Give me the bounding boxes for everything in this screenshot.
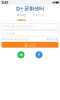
staticText: D+	[16, 5, 23, 12]
button[interactable]: 회원가입	[30, 12, 47, 21]
staticText: /비밀번호 찾기	[10, 37, 30, 41]
button[interactable]: Facebook login	[35, 51, 42, 58]
staticText: 아이디를 입력해주세요	[3, 25, 34, 28]
staticText: N	[19, 52, 22, 57]
staticText: 회원가입	[46, 38, 58, 41]
staticText: 로그인	[17, 13, 26, 17]
staticText: 로그인	[24, 42, 36, 47]
staticText: 아이디	[1, 38, 10, 41]
button[interactable]: 로그인	[1, 42, 58, 48]
staticText: 문화센터	[24, 5, 44, 12]
staticText: 회원가입	[32, 13, 44, 17]
staticText: f	[38, 52, 40, 57]
staticText: 9:41	[1, 0, 8, 5]
staticText: 비밀번호	[3, 32, 15, 35]
button[interactable]: 로그인	[13, 12, 30, 21]
button[interactable]: Naver login	[17, 51, 24, 58]
